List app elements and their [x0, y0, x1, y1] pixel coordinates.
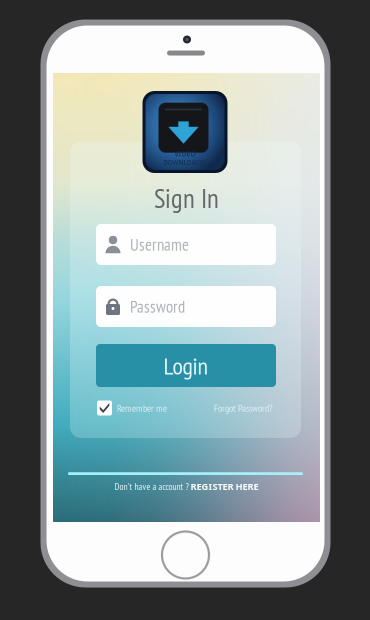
- button[interactable]: Username: [96, 224, 276, 265]
- staticText: VIDEO: [174, 149, 195, 158]
- button[interactable]: Login: [96, 344, 276, 387]
- staticText: Sign In: [154, 181, 219, 215]
- staticText: Don't have a account ?: [114, 480, 188, 493]
- staticText: Password: [130, 296, 185, 317]
- button[interactable]: Password: [96, 286, 276, 327]
- staticText: Username: [130, 234, 189, 255]
- staticText: DOWNLOADER: [163, 158, 206, 167]
- button[interactable]: Remember me: [97, 400, 167, 415]
- button[interactable]: Forgot Password?: [214, 400, 273, 415]
- staticText: Remember me: [117, 401, 167, 414]
- staticText: REGISTER HERE: [190, 480, 258, 493]
- staticText: Login: [163, 350, 208, 381]
- button[interactable]: Don't have a account ?: [114, 480, 258, 493]
- staticText: Forgot Password?: [214, 401, 273, 414]
